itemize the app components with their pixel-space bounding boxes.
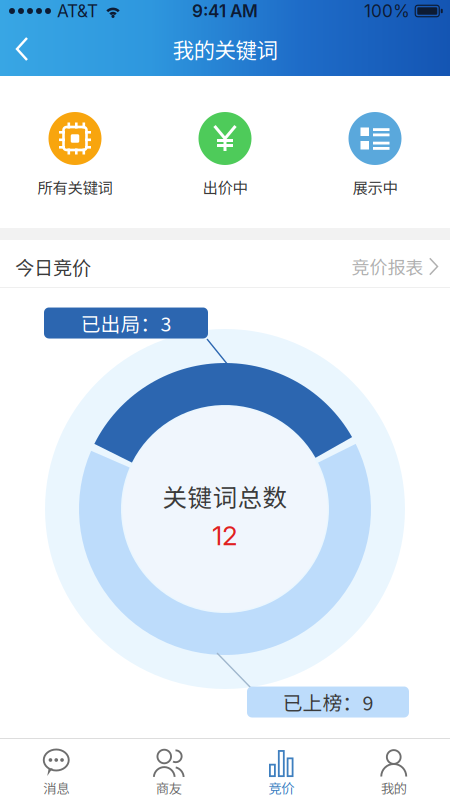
staticText: 竞价报表 xyxy=(351,253,423,279)
staticText: 12 xyxy=(212,520,238,552)
staticText: 竞价 xyxy=(268,778,294,797)
button[interactable]: 商友 xyxy=(112,739,225,800)
staticText: AT&T xyxy=(57,1,98,21)
button[interactable]: 我的 xyxy=(337,739,450,800)
staticText: 消息 xyxy=(43,778,69,797)
staticText: 我的关键词 xyxy=(172,33,277,64)
staticText: 所有关键词 xyxy=(37,176,112,198)
staticText: 已出局：3 xyxy=(80,309,171,337)
button[interactable]: 竞价 xyxy=(225,739,337,800)
button[interactable]: 展示中 xyxy=(300,76,450,228)
button[interactable]: 竞价报表 xyxy=(351,253,439,279)
staticText: 商友 xyxy=(156,778,182,797)
staticText: 我的 xyxy=(381,778,407,797)
staticText: 已上榜：9 xyxy=(282,688,373,716)
button[interactable]: Back xyxy=(0,22,55,76)
button[interactable]: 消息 xyxy=(0,739,112,800)
staticText: 关键词总数 xyxy=(162,478,287,514)
staticText: 今日竞价 xyxy=(15,252,91,280)
button[interactable]: 出价中 xyxy=(150,76,300,228)
staticText: 100% xyxy=(364,1,410,21)
staticText: 9:41 AM xyxy=(192,1,258,21)
staticText: 展示中 xyxy=(352,176,397,198)
button[interactable]: 所有关键词 xyxy=(0,76,150,228)
staticText: 出价中 xyxy=(202,176,247,198)
